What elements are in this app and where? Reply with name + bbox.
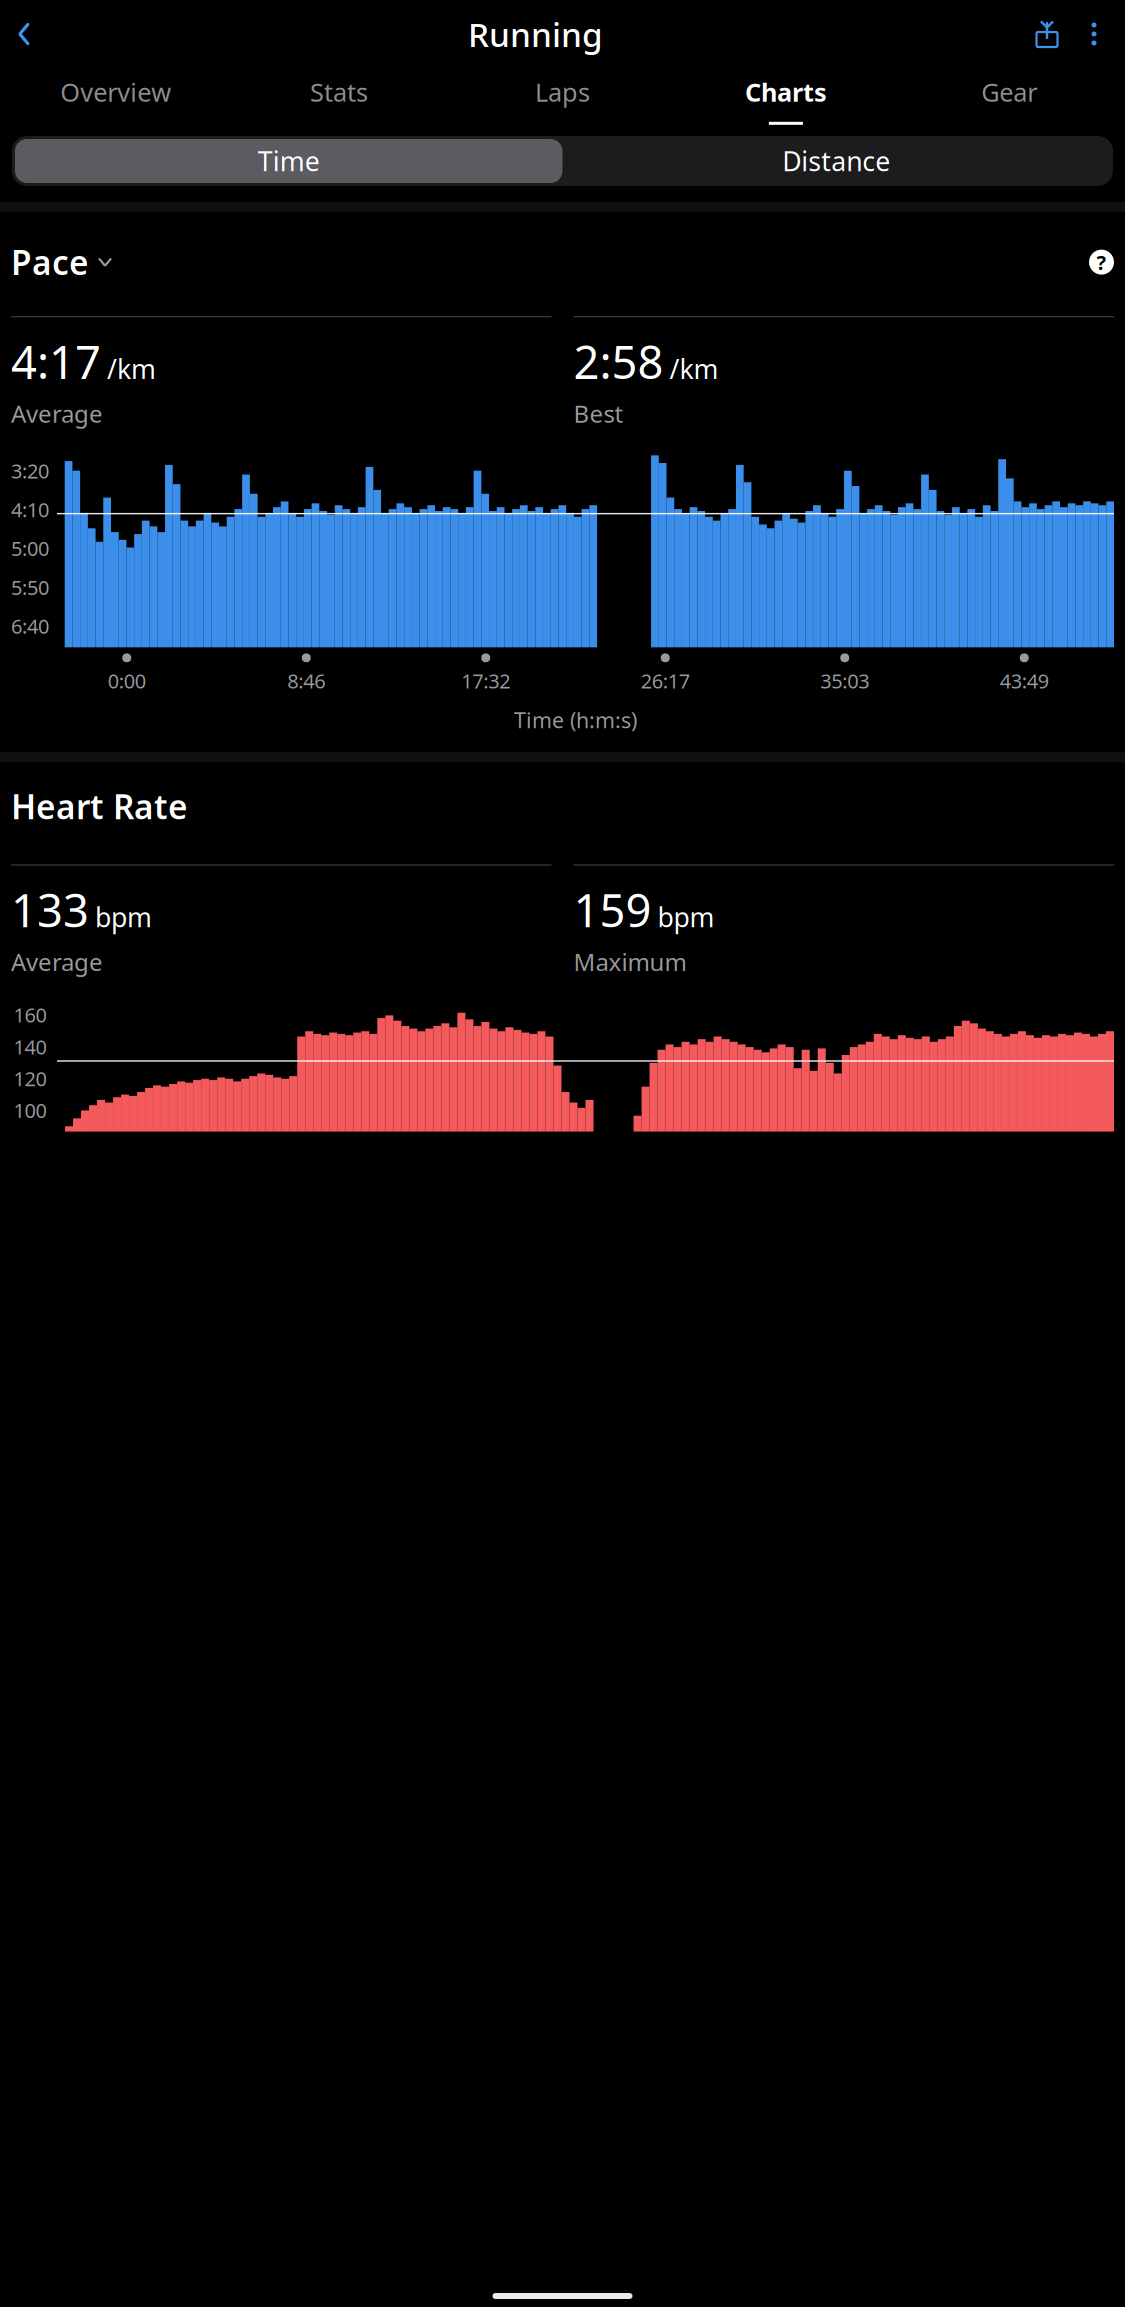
staticText: bpm: [657, 899, 714, 934]
button[interactable]: More options: [1071, 19, 1125, 49]
button[interactable]: Gear: [975, 74, 1043, 126]
button[interactable]: Charts: [739, 74, 833, 126]
button[interactable]: Share: [1023, 13, 1071, 55]
button[interactable]: Help: [1089, 250, 1114, 275]
staticText: 0:00: [108, 667, 146, 694]
staticText: Charts: [745, 75, 827, 109]
staticText: Average: [11, 397, 103, 429]
staticText: 5:50: [11, 574, 49, 600]
staticText: Average: [11, 946, 103, 978]
staticText: 43:49: [1000, 667, 1049, 694]
staticText: 17:32: [461, 667, 510, 694]
staticText: Best: [573, 397, 623, 429]
button[interactable]: Distance: [562, 139, 1110, 183]
staticText: Time (h:m:s): [514, 706, 637, 734]
staticText: 140: [13, 1033, 46, 1060]
staticText: bpm: [95, 899, 152, 934]
button[interactable]: Time: [15, 139, 562, 183]
staticText: 120: [13, 1065, 46, 1092]
staticText: 26:17: [641, 667, 690, 694]
staticText: 8:46: [287, 667, 325, 694]
staticText: /km: [107, 351, 156, 386]
staticText: 2:58: [573, 331, 663, 391]
staticText: 5:00: [11, 535, 49, 562]
staticText: 159: [573, 879, 651, 940]
button[interactable]: Overview: [54, 74, 177, 126]
staticText: 3:20: [11, 457, 49, 484]
staticText: Gear: [981, 75, 1037, 109]
staticText: 100: [13, 1097, 46, 1124]
button[interactable]: Stats: [304, 74, 374, 126]
staticText: 4:17: [11, 331, 101, 391]
button[interactable]: Laps: [529, 74, 596, 126]
staticText: ?: [1096, 249, 1106, 275]
staticText: Maximum: [573, 946, 686, 978]
staticText: Heart Rate: [11, 784, 188, 828]
button[interactable]: Back: [0, 13, 48, 55]
staticText: Stats: [310, 75, 368, 109]
staticText: 160: [13, 1002, 46, 1028]
staticText: Time: [258, 143, 320, 179]
button[interactable]: Pace: [11, 234, 113, 290]
staticText: /km: [669, 351, 718, 386]
staticText: Overview: [60, 75, 171, 109]
staticText: Distance: [782, 143, 890, 179]
staticText: Pace: [11, 240, 89, 284]
staticText: 35:03: [820, 667, 869, 694]
staticText: Running: [468, 12, 603, 56]
staticText: 4:10: [11, 496, 49, 523]
staticText: 133: [11, 879, 89, 940]
staticText: Laps: [535, 75, 590, 109]
staticText: 6:40: [11, 613, 49, 639]
